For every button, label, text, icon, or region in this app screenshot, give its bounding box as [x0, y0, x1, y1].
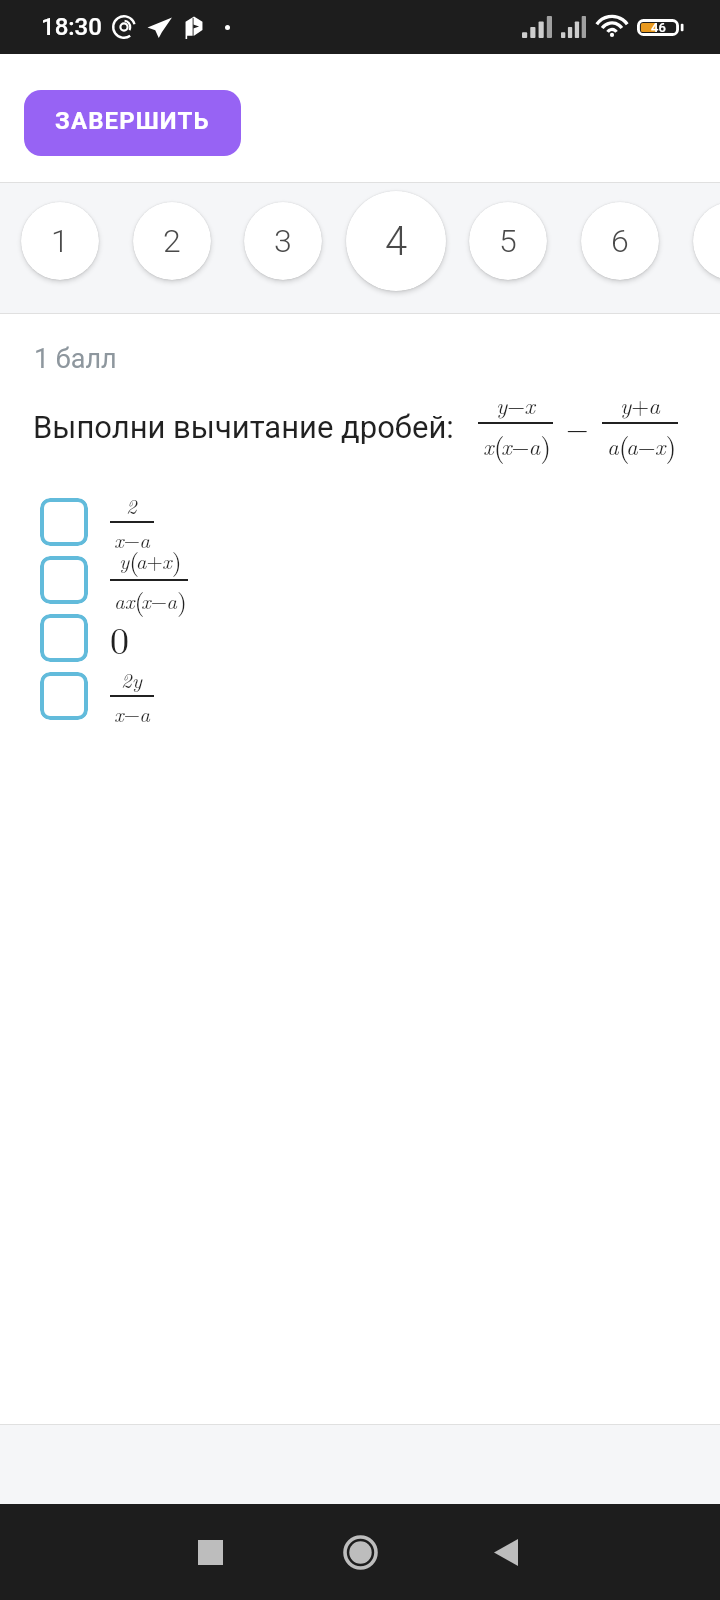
- button[interactable]: 7: [693, 202, 720, 280]
- staticText: 6: [611, 222, 629, 260]
- staticText: 1: [51, 222, 69, 260]
- button[interactable]: Home: [324, 1516, 396, 1588]
- button[interactable]: ЗАВЕРШИТЬ: [24, 90, 241, 156]
- staticText: ЗАВЕРШИТЬ: [55, 107, 210, 135]
- button[interactable]: 3: [244, 202, 322, 280]
- staticText: 0: [110, 611, 130, 665]
- button[interactable]: 4: [346, 191, 446, 291]
- button[interactable]: 2: [133, 202, 211, 280]
- button[interactable]: 2: [0, 493, 720, 551]
- staticText: 3: [274, 222, 292, 260]
- button[interactable]: 0: [0, 609, 720, 667]
- button[interactable]: y(a+x): [0, 551, 720, 609]
- button[interactable]: Recent apps: [174, 1516, 246, 1588]
- staticText: 2y: [121, 664, 142, 694]
- staticText: 46: [651, 20, 666, 35]
- staticText: Выполни вычитание дробей:: [33, 409, 454, 445]
- staticText: ax(x−a): [114, 582, 184, 618]
- staticText: y−x: [496, 388, 535, 421]
- staticText: −: [566, 406, 589, 447]
- staticText: 2: [163, 222, 181, 260]
- staticText: x(x−a): [483, 425, 548, 465]
- staticText: y+a: [620, 388, 660, 421]
- staticText: a(a−x): [607, 425, 673, 465]
- button[interactable]: 1: [21, 202, 99, 280]
- staticText: 4: [385, 218, 408, 265]
- button[interactable]: 2y: [0, 667, 720, 725]
- button[interactable]: 5: [469, 202, 547, 280]
- staticText: 1 балл: [34, 343, 117, 375]
- staticText: 5: [499, 222, 517, 260]
- button[interactable]: 6: [581, 202, 659, 280]
- staticText: x−a: [114, 698, 150, 728]
- button[interactable]: Back: [470, 1516, 542, 1588]
- staticText: y(a+x): [119, 542, 179, 578]
- staticText: 2: [126, 490, 137, 520]
- staticText: x−a: [114, 524, 150, 554]
- staticText: 18:30: [41, 13, 102, 41]
